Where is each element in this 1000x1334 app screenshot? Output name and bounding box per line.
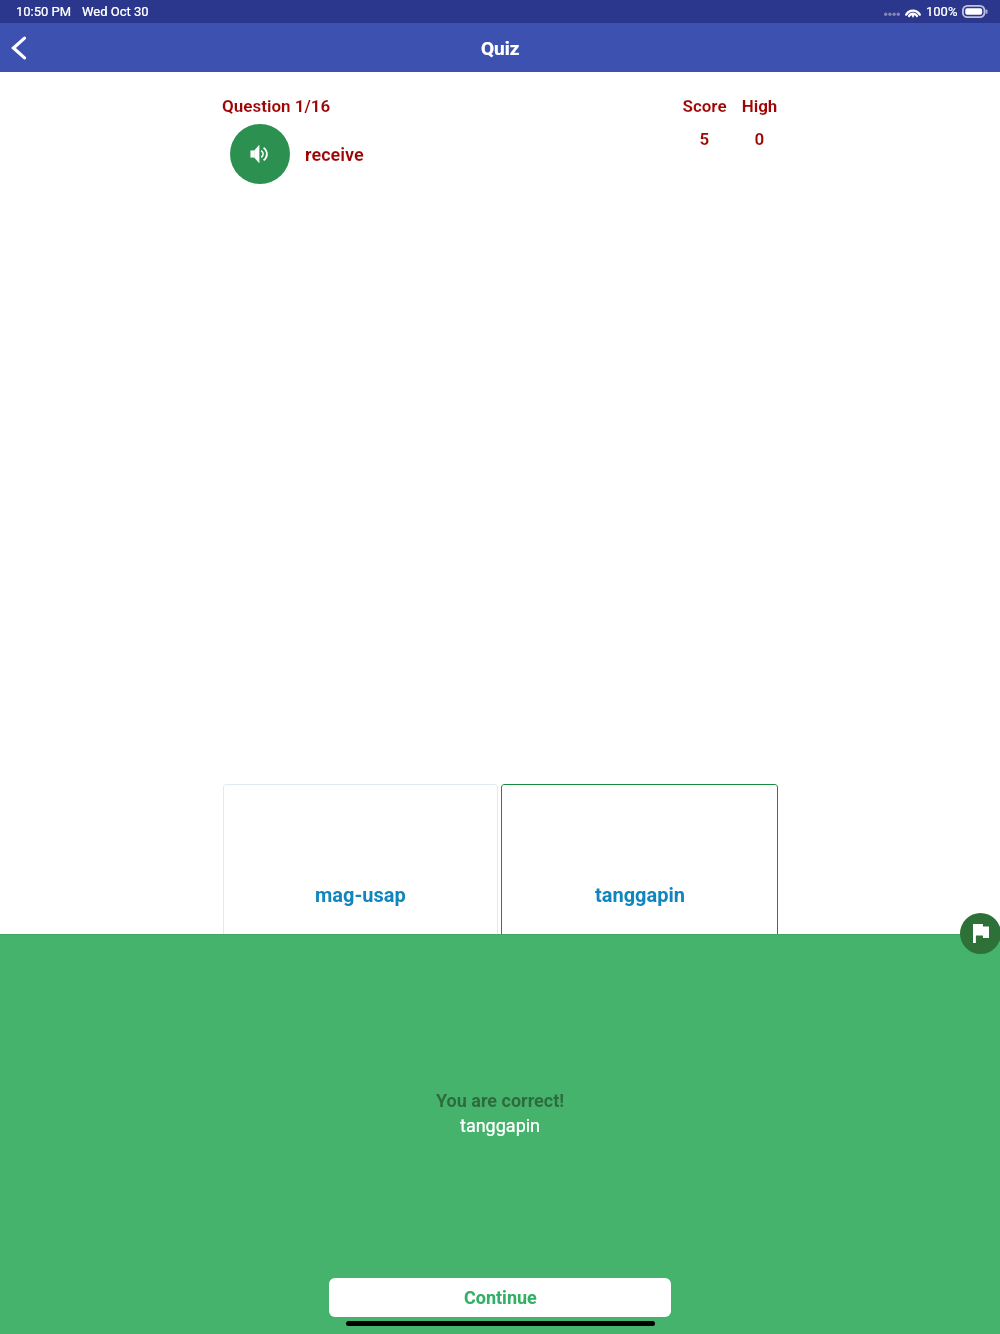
button[interactable]: Play pronunciation <box>230 124 290 184</box>
staticText: 0 <box>734 129 785 149</box>
staticText: Question 1/16 <box>222 96 331 116</box>
button[interactable]: Continue <box>329 1278 671 1317</box>
button[interactable]: Back <box>0 26 41 70</box>
staticText: Wed Oct 30 <box>82 4 149 19</box>
staticText: mag-usap <box>315 883 406 906</box>
staticText: You are correct! <box>436 1090 565 1111</box>
staticText: receive <box>305 144 364 165</box>
staticText: 10:50 PM <box>16 4 72 19</box>
staticText: 5 <box>675 129 734 149</box>
staticText: Score <box>675 96 734 116</box>
button[interactable]: mag-usap <box>223 784 498 964</box>
staticText: tanggapin <box>460 1115 541 1136</box>
staticText: tanggapin <box>595 883 685 906</box>
staticText: Continue <box>464 1287 537 1308</box>
staticText: High <box>734 96 785 116</box>
button[interactable]: tanggapin <box>501 784 778 964</box>
button[interactable]: Report problem <box>960 913 1000 954</box>
staticText: Quiz <box>481 37 520 59</box>
staticText: 100% <box>926 4 958 19</box>
